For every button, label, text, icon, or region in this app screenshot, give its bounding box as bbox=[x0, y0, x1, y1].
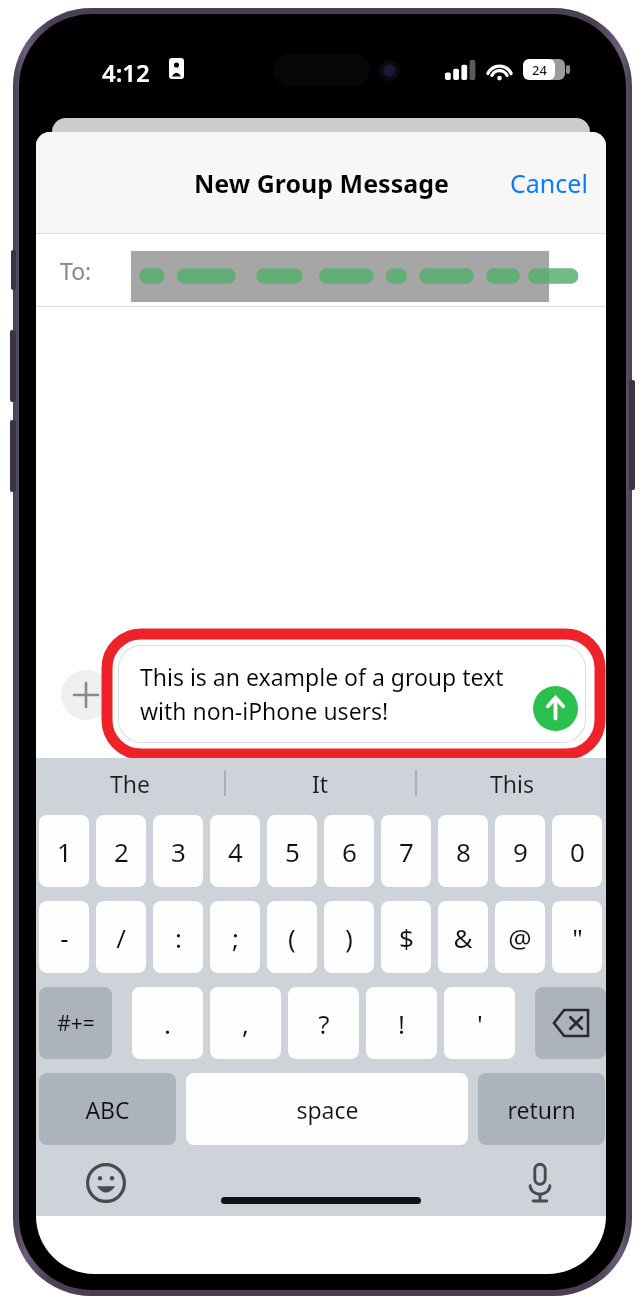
button[interactable]: ' bbox=[444, 987, 515, 1059]
staticText: To: bbox=[60, 255, 92, 286]
staticText: ! bbox=[398, 1006, 405, 1041]
button[interactable]: 5 bbox=[267, 815, 317, 887]
staticText: . bbox=[164, 1006, 171, 1041]
button[interactable]: space bbox=[186, 1073, 468, 1145]
button[interactable]: Add attachment bbox=[61, 670, 111, 720]
button[interactable]: Dictate bbox=[516, 1159, 564, 1207]
staticText: ABC bbox=[85, 1094, 130, 1125]
button[interactable]: / bbox=[96, 901, 146, 973]
button[interactable]: Backspace bbox=[535, 987, 606, 1059]
staticText: Cancel bbox=[510, 166, 588, 200]
staticText: / bbox=[116, 920, 126, 955]
button[interactable]: 3 bbox=[153, 815, 203, 887]
button[interactable]: : bbox=[153, 901, 203, 973]
staticText: ' bbox=[477, 1006, 483, 1041]
button[interactable]: Cancel bbox=[492, 152, 606, 214]
button[interactable]: 4 bbox=[210, 815, 260, 887]
staticText: This is an example of a group text bbox=[140, 661, 504, 692]
staticText: ? bbox=[318, 1006, 330, 1041]
button[interactable]: , bbox=[210, 987, 281, 1059]
button[interactable]: ; bbox=[210, 901, 260, 973]
staticText: 6 bbox=[342, 834, 357, 869]
button[interactable]: @ bbox=[495, 901, 545, 973]
staticText: 2 bbox=[114, 834, 129, 869]
button[interactable]: 0 bbox=[552, 815, 602, 887]
button[interactable]: 1 bbox=[39, 815, 89, 887]
staticText: @ bbox=[508, 920, 532, 955]
button[interactable]: ? bbox=[288, 987, 359, 1059]
button[interactable]: 7 bbox=[381, 815, 431, 887]
staticText: #+= bbox=[57, 1009, 95, 1038]
button[interactable]: Emoji bbox=[82, 1159, 130, 1207]
button[interactable]: The bbox=[36, 758, 224, 808]
staticText: " bbox=[572, 920, 583, 955]
button[interactable]: ( bbox=[267, 901, 317, 973]
button[interactable]: ABC bbox=[39, 1073, 176, 1145]
staticText: ) bbox=[345, 920, 353, 955]
staticText: New Group Message bbox=[194, 166, 449, 200]
staticText: 4:12 bbox=[102, 56, 150, 89]
staticText: The bbox=[110, 768, 150, 799]
button[interactable]: . bbox=[132, 987, 203, 1059]
staticText: 3 bbox=[171, 834, 186, 869]
staticText: This bbox=[490, 768, 534, 799]
button[interactable]: - bbox=[39, 901, 89, 973]
staticText: : bbox=[175, 920, 182, 955]
button[interactable]: " bbox=[552, 901, 602, 973]
button[interactable]: return bbox=[478, 1073, 605, 1145]
staticText: 8 bbox=[456, 834, 471, 869]
button[interactable]: 9 bbox=[495, 815, 545, 887]
staticText: - bbox=[60, 920, 69, 955]
staticText: ( bbox=[288, 920, 296, 955]
button[interactable]: Send bbox=[533, 686, 578, 731]
staticText: 5 bbox=[285, 834, 300, 869]
button[interactable]: 8 bbox=[438, 815, 488, 887]
staticText: 4 bbox=[228, 834, 243, 869]
button[interactable]: ! bbox=[366, 987, 437, 1059]
staticText: ; bbox=[232, 920, 239, 955]
staticText: , bbox=[242, 1006, 249, 1041]
staticText: 9 bbox=[513, 834, 528, 869]
button[interactable]: & bbox=[438, 901, 488, 973]
staticText: space bbox=[296, 1094, 359, 1125]
staticText: & bbox=[453, 920, 473, 955]
staticText: It bbox=[312, 768, 329, 799]
button[interactable]: To: bbox=[36, 234, 606, 307]
button[interactable]: $ bbox=[381, 901, 431, 973]
button[interactable]: This is an example of a group text bbox=[118, 645, 586, 743]
staticText: with non-iPhone users! bbox=[140, 695, 389, 726]
button[interactable]: This bbox=[417, 758, 606, 808]
button[interactable]: ) bbox=[324, 901, 374, 973]
button[interactable]: 6 bbox=[324, 815, 374, 887]
staticText: $ bbox=[399, 920, 414, 955]
button[interactable]: It bbox=[226, 758, 415, 808]
staticText: return bbox=[507, 1094, 576, 1125]
staticText: 1 bbox=[57, 834, 72, 869]
staticText: 0 bbox=[570, 834, 585, 869]
staticText: 24 bbox=[532, 61, 547, 79]
button[interactable]: #+= bbox=[39, 987, 112, 1059]
staticText: 7 bbox=[399, 834, 414, 869]
button[interactable]: 2 bbox=[96, 815, 146, 887]
